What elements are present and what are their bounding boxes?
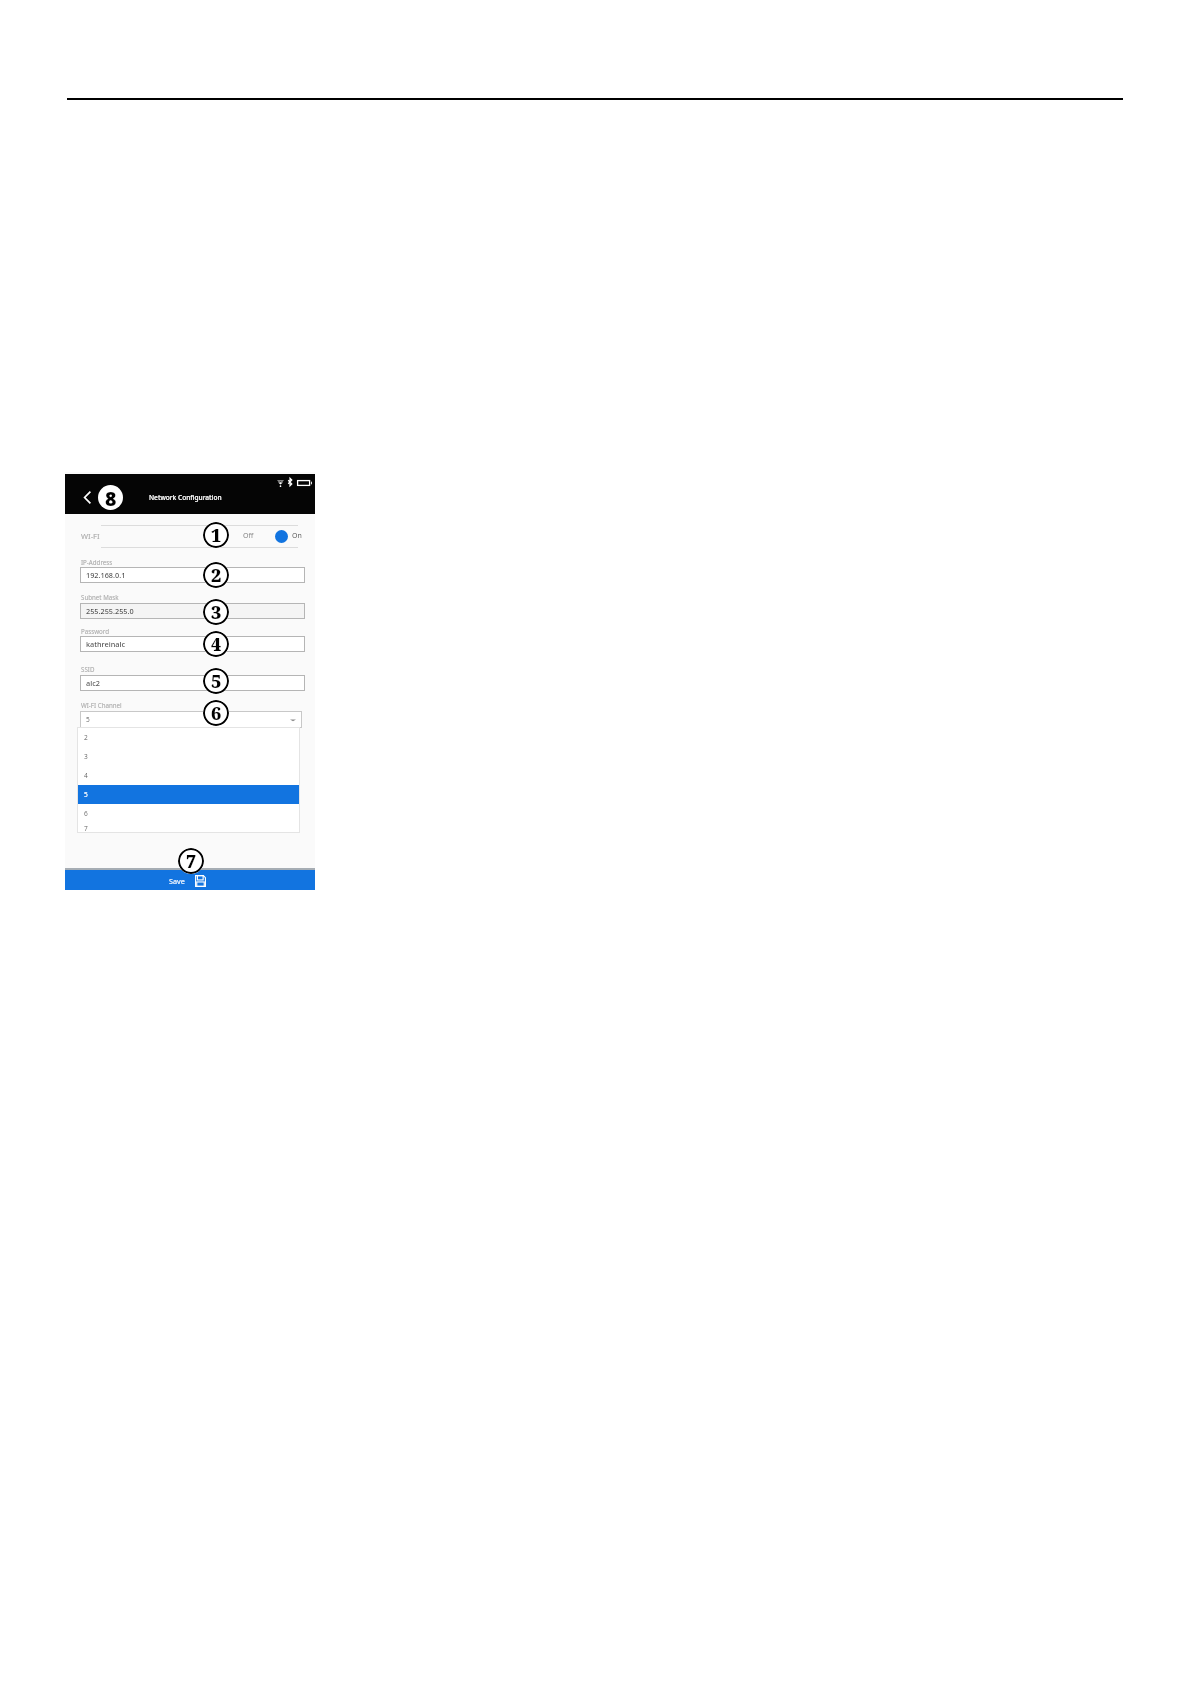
staticText: 192.168.0.1 bbox=[86, 570, 126, 580]
staticText: Subnet Mask bbox=[81, 593, 119, 601]
button[interactable]: Save bbox=[65, 870, 315, 890]
button[interactable]: 255.255.255.0 bbox=[80, 603, 305, 619]
staticText: kathreinalc bbox=[86, 639, 126, 649]
staticText: SSID bbox=[81, 665, 95, 673]
staticText: alc2 bbox=[86, 678, 100, 688]
staticText: 6 bbox=[84, 809, 88, 818]
staticText: 6 bbox=[211, 701, 222, 726]
staticText: 7 bbox=[84, 824, 88, 833]
staticText: WI-FI bbox=[81, 531, 100, 541]
staticText: 3 bbox=[84, 752, 88, 761]
button[interactable]: 4 bbox=[77, 766, 300, 785]
staticText: WI-FI Channel bbox=[81, 701, 122, 709]
staticText: Network Configuration bbox=[149, 493, 222, 502]
button[interactable]: 5 bbox=[77, 785, 300, 804]
staticText: 255.255.255.0 bbox=[86, 606, 134, 616]
staticText: 3 bbox=[211, 600, 222, 625]
button[interactable]: 7 bbox=[77, 823, 300, 833]
staticText: IP-Address bbox=[81, 558, 113, 566]
button[interactable]: Back bbox=[77, 484, 95, 508]
staticText: 1 bbox=[211, 523, 222, 548]
staticText: 4 bbox=[84, 771, 88, 780]
staticText: Save bbox=[169, 876, 185, 886]
button[interactable]: 5 bbox=[80, 711, 302, 728]
staticText: 5 bbox=[211, 669, 222, 694]
staticText: 5 bbox=[86, 715, 90, 724]
staticText: Password bbox=[81, 627, 109, 635]
button[interactable]: 2 bbox=[77, 728, 300, 747]
button[interactable]: 3 bbox=[77, 747, 300, 766]
button[interactable]: kathreinalc bbox=[80, 636, 305, 652]
staticText: 8 bbox=[105, 485, 117, 510]
staticText: Off bbox=[243, 531, 254, 541]
button[interactable]: alc2 bbox=[80, 675, 305, 691]
button[interactable]: 6 bbox=[77, 804, 300, 823]
staticText: 2 bbox=[211, 563, 222, 588]
staticText: 5 bbox=[84, 790, 88, 799]
staticText: 2 bbox=[84, 733, 88, 742]
staticText: 4 bbox=[211, 632, 222, 657]
staticText: On bbox=[292, 531, 302, 541]
button[interactable]: Wi-Fi on/off bbox=[243, 529, 303, 543]
button[interactable]: 192.168.0.1 bbox=[80, 567, 305, 583]
staticText: 7 bbox=[186, 849, 197, 874]
